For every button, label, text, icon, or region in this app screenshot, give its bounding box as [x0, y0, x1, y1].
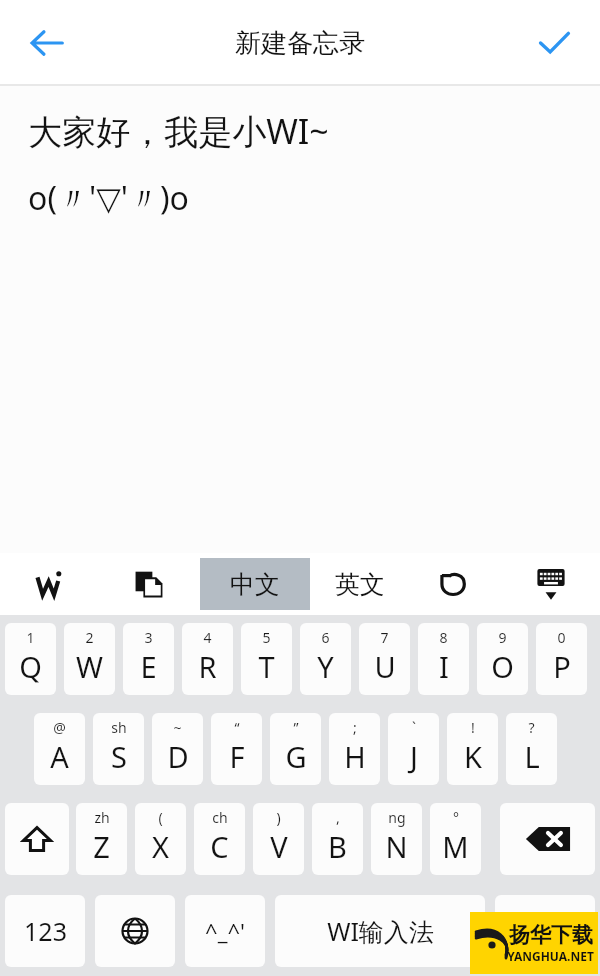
button[interactable]: ! [447, 713, 498, 785]
staticText: 扬华下载 [509, 922, 593, 948]
staticText: ~ [173, 718, 182, 737]
staticText: ng [388, 808, 406, 827]
staticText: V [270, 827, 288, 866]
staticText: T [258, 647, 275, 686]
staticText: E [140, 647, 157, 686]
button[interactable]: ng [371, 803, 422, 875]
button[interactable]: Space [275, 895, 485, 967]
staticText: C [210, 827, 229, 866]
staticText: , [336, 808, 340, 827]
button[interactable]: ) [253, 803, 304, 875]
staticText: ` [412, 718, 416, 737]
button[interactable]: 2 [64, 623, 115, 695]
staticText: H [344, 737, 366, 776]
staticText: 7 [380, 628, 389, 647]
button[interactable]: Shift [5, 803, 69, 875]
staticText: @ [53, 718, 66, 737]
button[interactable]: 7 [359, 623, 410, 695]
staticText: M [442, 827, 469, 866]
staticText: 2 [85, 628, 94, 647]
button[interactable]: ( [135, 803, 186, 875]
staticText: Z [93, 827, 110, 866]
button[interactable]: 3 [123, 623, 174, 695]
staticText: 9 [498, 628, 507, 647]
button[interactable]: ch [194, 803, 245, 875]
button[interactable]: 6 [300, 623, 351, 695]
button[interactable]: Numbers [5, 895, 85, 967]
button[interactable]: @ [34, 713, 85, 785]
button[interactable]: 9 [477, 623, 528, 695]
staticText: 123 [24, 914, 67, 948]
button[interactable]: ° [430, 803, 481, 875]
staticText: 英文 [335, 569, 385, 600]
button[interactable]: ` [388, 713, 439, 785]
staticText: 8 [439, 628, 448, 647]
staticText: D [167, 737, 189, 776]
staticText: 新建备忘录 [235, 27, 365, 60]
staticText: R [198, 647, 217, 686]
button[interactable]: 1 [5, 623, 56, 695]
button[interactable]: Emoticons [185, 895, 265, 967]
staticText: J [410, 737, 418, 776]
button[interactable]: Back [14, 11, 78, 75]
button[interactable]: “ [211, 713, 262, 785]
button[interactable]: Enter [495, 895, 595, 967]
button[interactable]: sh [93, 713, 144, 785]
staticText: 0 [557, 628, 566, 647]
staticText: U [374, 647, 396, 686]
button[interactable]: Save [522, 11, 586, 75]
button[interactable]: ~ [152, 713, 203, 785]
staticText: 1 [26, 628, 35, 647]
staticText: 换行 [520, 916, 570, 947]
staticText: 4 [203, 628, 212, 647]
staticText: K [464, 737, 482, 776]
staticText: L [524, 737, 540, 776]
staticText: YANGHUA.NET [507, 948, 594, 964]
button[interactable]: Hide keyboard [522, 555, 580, 613]
staticText: A [50, 737, 69, 776]
button[interactable]: zh [76, 803, 127, 875]
staticText: 大家好，我是小WI~ [28, 108, 329, 154]
button[interactable]: Copy [122, 557, 176, 611]
staticText: ^_^' [205, 916, 245, 946]
staticText: “ [234, 718, 240, 737]
staticText: W [76, 647, 103, 686]
staticText: ” [293, 718, 299, 737]
button[interactable]: ? [506, 713, 557, 785]
staticText: N [385, 827, 408, 866]
staticText: ( [158, 808, 163, 827]
staticText: B [328, 827, 347, 866]
staticText: ) [276, 808, 281, 827]
staticText: ° [453, 808, 459, 827]
staticText: zh [94, 808, 110, 827]
button[interactable]: 大家好，我是小WI~ [0, 86, 600, 553]
button[interactable]: 英文 [312, 553, 408, 615]
button[interactable]: WI input method logo [24, 557, 78, 611]
staticText: ? [528, 718, 535, 737]
button[interactable]: Undo [424, 556, 480, 612]
staticText: I [439, 647, 449, 686]
button[interactable]: 4 [182, 623, 233, 695]
button[interactable]: , [312, 803, 363, 875]
button[interactable]: Change language [95, 895, 175, 967]
button[interactable]: 中文 [200, 558, 310, 610]
staticText: sh [111, 718, 127, 737]
staticText: S [111, 737, 127, 776]
staticText: 3 [144, 628, 153, 647]
button[interactable]: 5 [241, 623, 292, 695]
button[interactable]: ; [329, 713, 380, 785]
button[interactable]: Backspace [500, 803, 595, 875]
staticText: Q [19, 647, 42, 686]
staticText: o(〃'▽'〃)o [28, 176, 189, 220]
staticText: ch [212, 808, 228, 827]
button[interactable]: ” [270, 713, 321, 785]
staticText: 6 [321, 628, 330, 647]
staticText: O [491, 647, 514, 686]
button[interactable]: 0 [536, 623, 587, 695]
staticText: ! [471, 718, 475, 737]
staticText: F [229, 737, 245, 776]
staticText: G [285, 737, 307, 776]
staticText: X [152, 827, 169, 866]
button[interactable]: 8 [418, 623, 469, 695]
staticText: WI输入法 [327, 914, 434, 948]
